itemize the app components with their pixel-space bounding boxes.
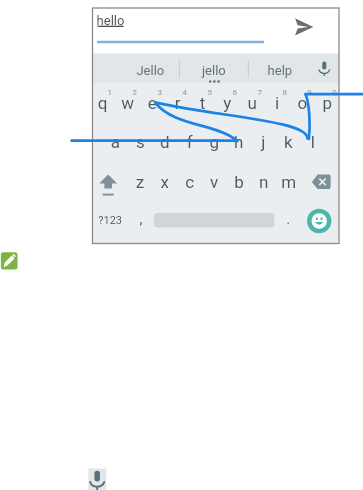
button[interactable]: Suggestion jello bbox=[180, 54, 248, 83]
button[interactable]: Symbols bbox=[96, 210, 126, 236]
button[interactable]: Suggestion help bbox=[249, 54, 289, 83]
button[interactable]: Voice input bbox=[310, 54, 339, 83]
button[interactable]: Send bbox=[295, 14, 319, 40]
button[interactable]: Space bbox=[154, 210, 275, 232]
button[interactable]: Shift bbox=[95, 170, 122, 196]
button[interactable]: Suggestion Jello bbox=[93, 54, 179, 83]
button[interactable]: Microphone bbox=[88, 468, 106, 490]
button[interactable]: Emoji bbox=[306, 208, 333, 235]
button[interactable]: Edit bbox=[0, 251, 19, 271]
button[interactable]: Backspace bbox=[310, 170, 337, 196]
